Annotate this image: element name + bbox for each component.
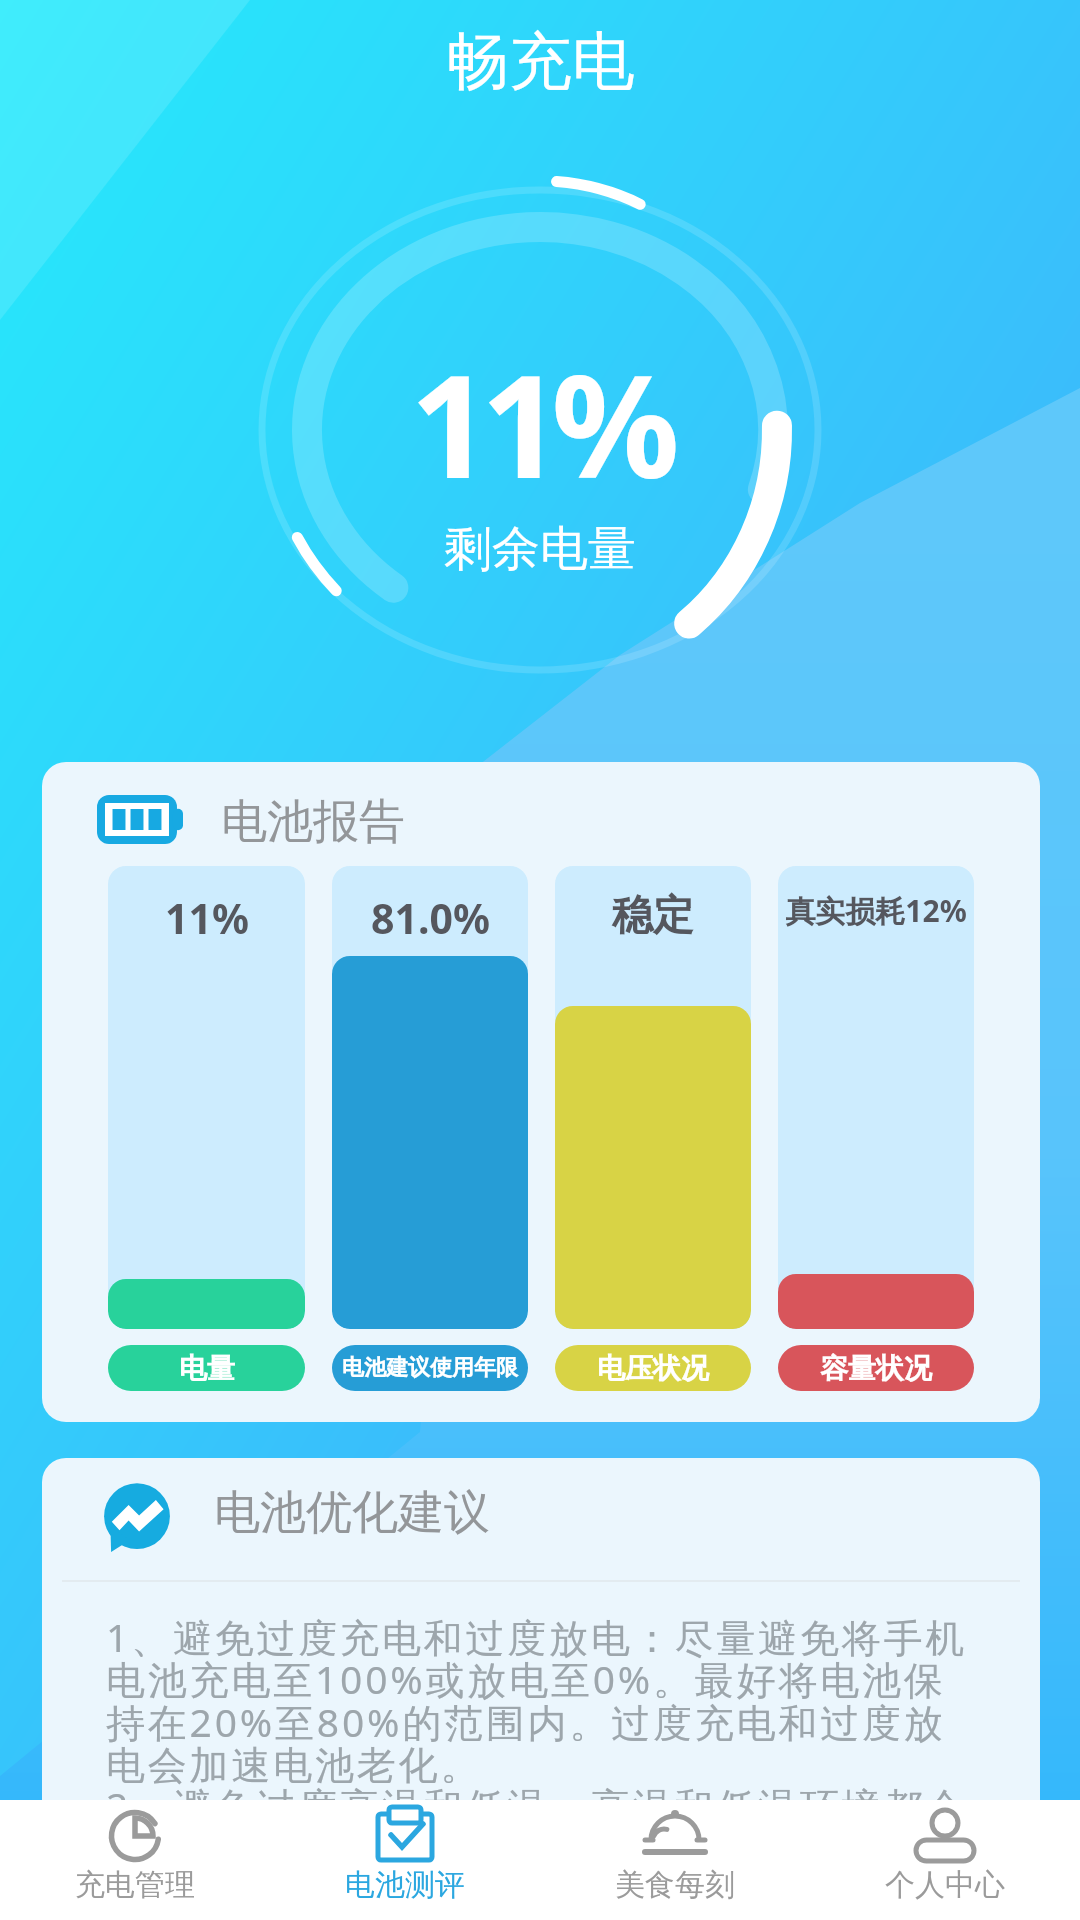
button[interactable]: 美食每刻 (540, 1800, 810, 1920)
button[interactable]: 充电管理 (0, 1800, 270, 1920)
staticText: 电池报告 (221, 793, 405, 851)
button[interactable]: 容量状况 (778, 1345, 974, 1391)
button[interactable]: 个人中心 (810, 1800, 1080, 1920)
staticText: 稳定 (612, 890, 694, 942)
staticText: 81.0% (371, 890, 490, 946)
staticText: 容量状况 (820, 1351, 932, 1386)
button[interactable]: 电压状况 (555, 1345, 751, 1391)
staticText: 11% (165, 890, 249, 946)
staticText: 1、避免过度充电和过度放电：尽量避免将手机电池充电至100%或放电至0%。最好将… (106, 1610, 978, 1833)
other: 充电管理 (105, 1810, 165, 1862)
other: 个人中心 (915, 1810, 975, 1862)
staticText: 真实损耗12% (785, 890, 967, 931)
staticText: 电压状况 (597, 1351, 709, 1386)
button[interactable]: 电量 (108, 1345, 305, 1391)
button[interactable]: 电池测评 (270, 1800, 540, 1920)
other: 美食每刻 (645, 1810, 705, 1862)
other: 电池测评 (375, 1810, 435, 1862)
staticText: 电量 (179, 1351, 235, 1386)
button[interactable]: 畅充电 (0, 0, 1080, 122)
staticText: 个人中心 (885, 1866, 1005, 1904)
staticText: 充电管理 (75, 1866, 195, 1904)
staticText: 电池建议使用年限 (342, 1354, 518, 1382)
staticText: 11% (410, 326, 670, 519)
staticText: 美食每刻 (615, 1866, 735, 1904)
staticText: 电池测评 (345, 1866, 465, 1904)
staticText: 剩余电量 (444, 519, 636, 579)
staticText: 电池优化建议 (214, 1484, 490, 1542)
button[interactable]: 电池建议使用年限 (332, 1345, 528, 1391)
staticText: 畅充电 (446, 22, 635, 101)
